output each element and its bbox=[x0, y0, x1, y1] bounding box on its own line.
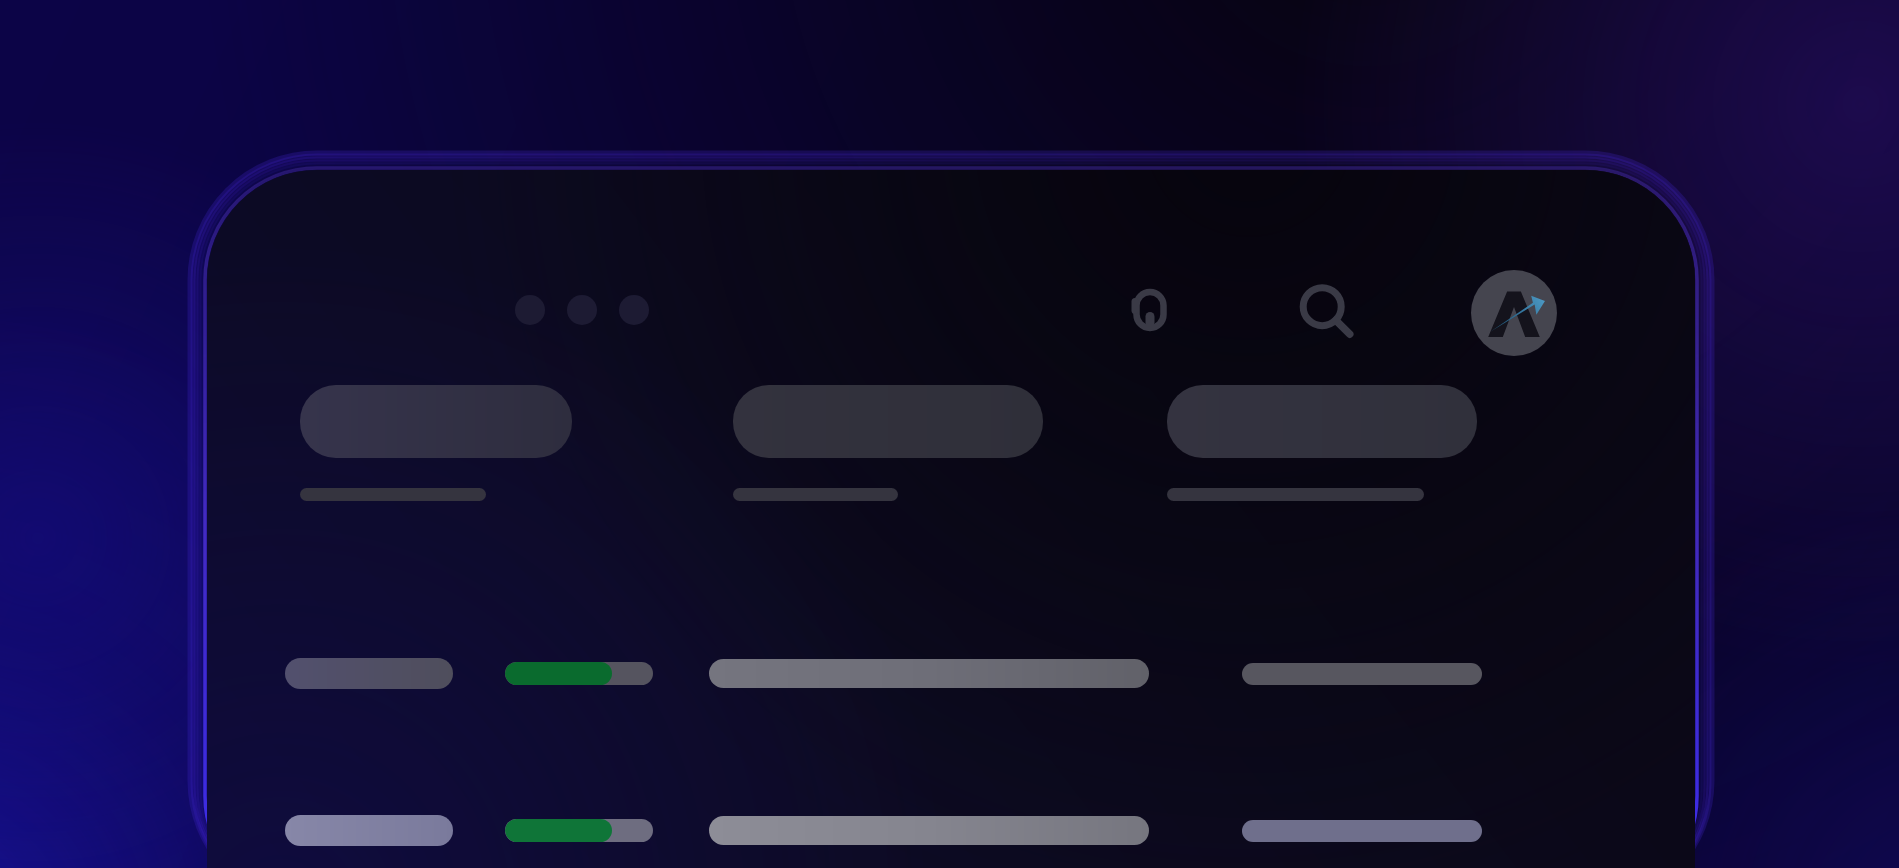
button[interactable] bbox=[1167, 385, 1477, 501]
button[interactable] bbox=[733, 385, 1043, 501]
button[interactable]: Window controls bbox=[515, 295, 649, 325]
button[interactable]: Search bbox=[1297, 282, 1353, 338]
button[interactable] bbox=[207, 815, 1695, 868]
button[interactable]: Profile bbox=[1471, 270, 1557, 356]
button[interactable] bbox=[300, 385, 572, 501]
button[interactable]: Attach bbox=[1122, 282, 1178, 338]
button[interactable] bbox=[207, 658, 1695, 868]
